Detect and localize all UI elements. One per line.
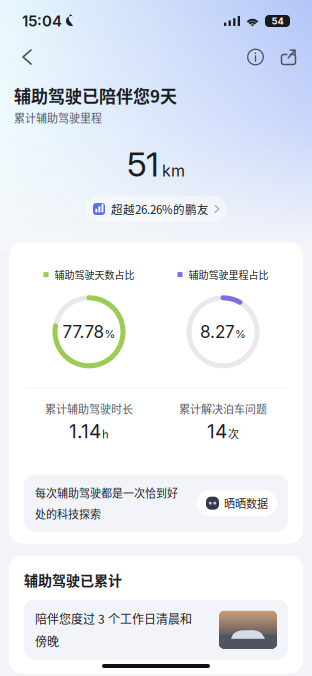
- button[interactable]: Share: [272, 42, 305, 72]
- staticText: 54: [271, 15, 283, 27]
- button[interactable]: Back: [7, 42, 47, 72]
- staticText: 每次辅助驾驶都是一次恰到好 处的科技探索: [35, 485, 178, 522]
- staticText: 77.78: [62, 321, 104, 342]
- staticText: km: [162, 161, 185, 180]
- staticText: 次: [228, 425, 239, 441]
- staticText: 晒晒数据: [224, 495, 268, 511]
- staticText: 累计辅助驾驶里程: [14, 110, 102, 125]
- staticText: 辅助驾驶天数占比: [54, 267, 134, 282]
- staticText: 辅助驾驶已累计: [24, 570, 122, 590]
- staticText: 15:04: [22, 12, 62, 30]
- staticText: %: [104, 327, 115, 341]
- staticText: 8.27: [200, 321, 235, 342]
- staticText: 陪伴您度过 3 个工作日清晨和 傍晚: [35, 610, 192, 650]
- staticText: 51: [127, 143, 159, 185]
- staticText: 辅助驾驶里程占比: [188, 267, 268, 282]
- staticText: %: [235, 327, 246, 341]
- staticText: 累计辅助驾驶时长: [45, 401, 133, 417]
- staticText: 1.14: [69, 420, 101, 443]
- staticText: 辅助驾驶已陪伴您9天: [14, 83, 177, 108]
- staticText: 超越26.26%的鹏友: [111, 201, 209, 217]
- staticText: h: [102, 425, 109, 441]
- button[interactable]: Info: [239, 42, 272, 72]
- staticText: 14: [207, 420, 227, 443]
- button[interactable]: 晒晒数据: [197, 490, 277, 516]
- staticText: 累计解决泊车问题: [179, 401, 267, 417]
- button[interactable]: 超越26.26%的鹏友: [85, 196, 227, 222]
